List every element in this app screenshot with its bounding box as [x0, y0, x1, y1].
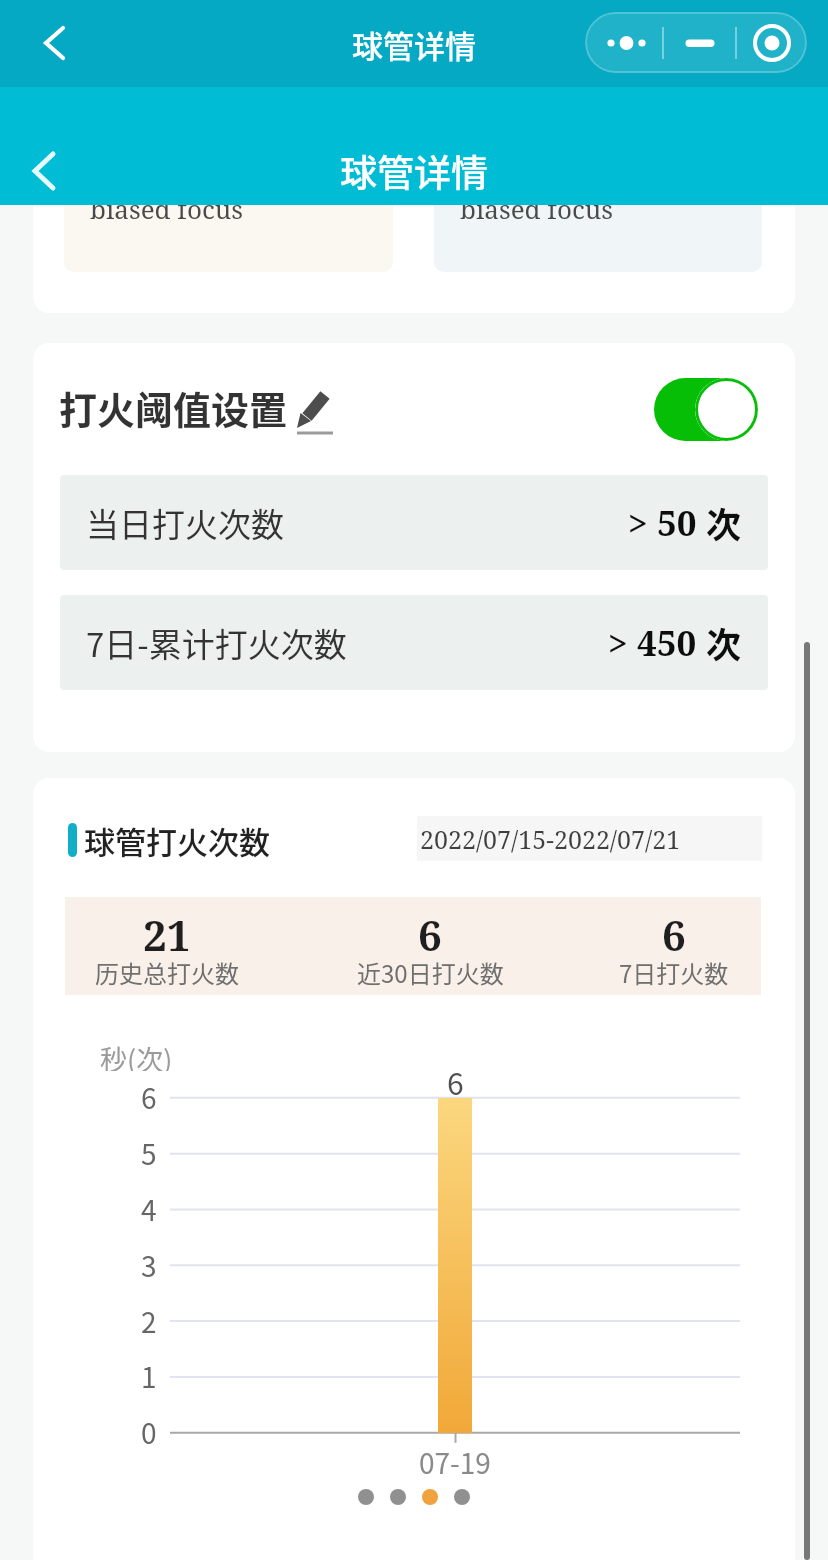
- staticText: 3: [141, 1245, 157, 1286]
- button[interactable]: [654, 378, 758, 441]
- staticText: 4: [141, 1189, 157, 1230]
- button[interactable]: 当日打火次数: [60, 475, 768, 570]
- staticText: 球管详情: [340, 144, 488, 198]
- staticText: 历史总打火数: [95, 955, 239, 990]
- staticText: 2022/07/15-2022/07/21: [420, 822, 681, 856]
- staticText: biased focus: [90, 191, 243, 226]
- staticText: 球管打火次数: [84, 818, 270, 862]
- staticText: 2: [141, 1301, 157, 1342]
- staticText: 7日打火数: [619, 955, 729, 990]
- staticText: 21: [143, 906, 191, 952]
- staticText: 6: [141, 1077, 157, 1118]
- button[interactable]: [36, 18, 76, 68]
- staticText: 次: [706, 617, 742, 668]
- staticText: biased focus: [460, 191, 613, 226]
- button[interactable]: [585, 12, 807, 73]
- staticText: 6: [418, 906, 442, 952]
- staticText: 6: [447, 1060, 464, 1100]
- staticText: 0: [141, 1412, 157, 1453]
- staticText: 1: [141, 1356, 157, 1397]
- staticText: 球管详情: [352, 22, 476, 67]
- staticText: 次: [706, 497, 742, 548]
- staticText: 打火阈值设置: [59, 380, 288, 435]
- button[interactable]: 7日-累计打火次数: [60, 595, 768, 690]
- staticText: > 450: [608, 619, 697, 667]
- staticText: 07-19: [419, 1442, 491, 1482]
- button[interactable]: 2022/07/15-2022/07/21: [417, 816, 762, 861]
- staticText: 当日打火次数: [86, 499, 284, 547]
- staticText: 6: [662, 906, 686, 952]
- staticText: 5: [141, 1133, 157, 1174]
- button[interactable]: [390, 1489, 406, 1505]
- staticText: 7日-累计打火次数: [86, 619, 347, 667]
- button[interactable]: [454, 1489, 470, 1505]
- staticText: 近30日打火数: [357, 955, 504, 990]
- button[interactable]: [422, 1489, 438, 1505]
- button[interactable]: [26, 146, 66, 196]
- staticText: 秒(次): [100, 1039, 173, 1071]
- button[interactable]: [358, 1489, 374, 1505]
- staticText: > 50: [628, 499, 697, 547]
